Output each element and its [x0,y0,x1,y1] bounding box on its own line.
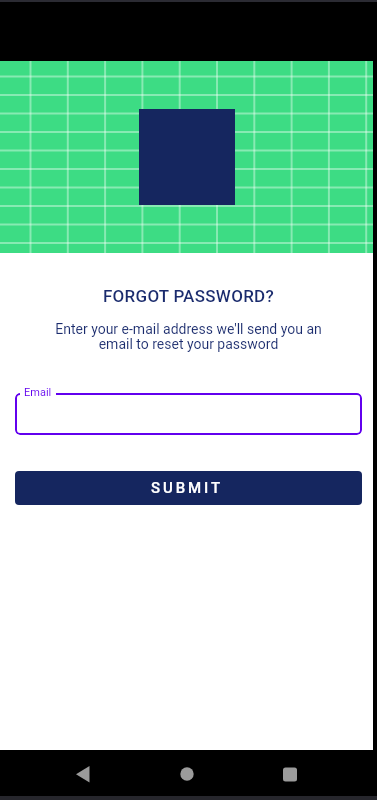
button[interactable] [163,750,211,800]
staticText: Email [24,386,52,399]
button[interactable] [59,750,107,800]
staticText: FORGOT PASSWORD? [0,286,377,306]
staticText: email to reset your password [0,336,377,352]
staticText: SUBMIT [151,479,223,497]
button[interactable] [266,750,314,800]
button[interactable]: SUBMIT [15,471,362,505]
staticText: Enter your e-mail address we'll send you… [0,321,377,337]
button[interactable] [15,393,362,435]
